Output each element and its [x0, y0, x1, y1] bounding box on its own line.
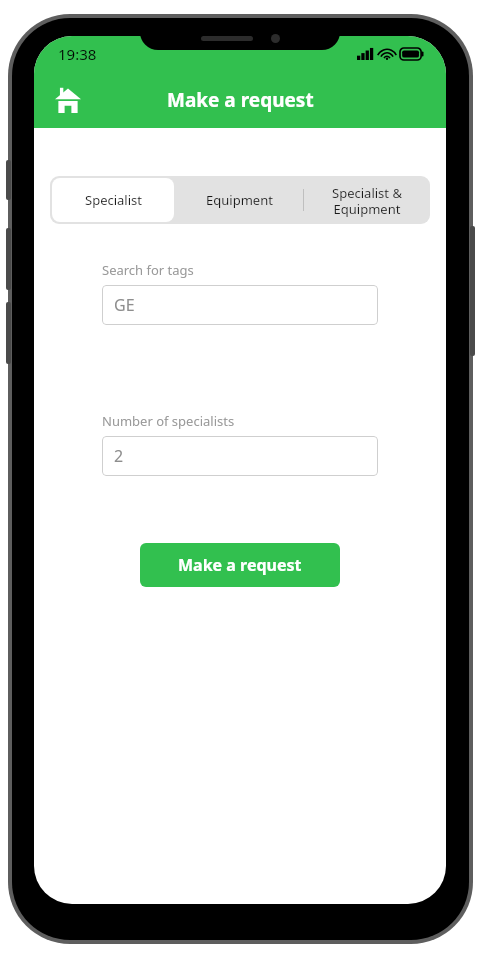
staticText: Specialist & Equipment	[332, 184, 402, 217]
staticText: Make a request	[178, 554, 302, 576]
staticText: Equipment	[206, 191, 273, 209]
button[interactable]: Specialist & Equipment	[303, 176, 430, 224]
button[interactable]: Equipment	[176, 176, 303, 224]
staticText: GE	[114, 294, 135, 316]
staticText: 2	[114, 445, 124, 467]
button[interactable]: Specialist	[52, 178, 174, 222]
staticText: Number of specialists	[102, 412, 235, 430]
button[interactable]: 2	[102, 436, 378, 476]
button[interactable]: Make a request	[140, 543, 340, 587]
staticText: Specialist	[85, 191, 142, 209]
button[interactable]: Home	[46, 78, 90, 122]
staticText: Make a request	[167, 87, 314, 113]
staticText: Search for tags	[102, 261, 194, 279]
button[interactable]: GE	[102, 285, 378, 325]
staticText: 19:38	[58, 44, 97, 64]
